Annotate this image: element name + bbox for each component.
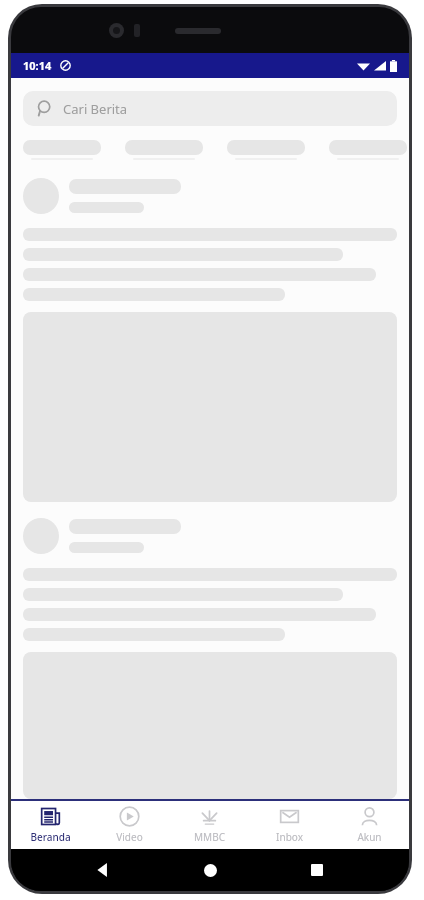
button[interactable]: Video [90, 801, 169, 849]
button[interactable]: Home [195, 855, 225, 885]
staticText: Akun [357, 830, 382, 844]
button[interactable]: MMBC [169, 801, 249, 849]
button[interactable]: Back [88, 855, 118, 885]
staticText: 10:14 [23, 58, 52, 73]
button[interactable]: Inbox [249, 801, 329, 849]
button[interactable]: Cari Berita [23, 91, 397, 126]
staticText: MMBC [194, 830, 225, 844]
button[interactable]: Akun [329, 801, 409, 849]
button[interactable]: Beranda [11, 801, 90, 849]
staticText: Video [116, 830, 143, 844]
staticText: Inbox [276, 830, 303, 844]
button[interactable]: Recent apps [302, 855, 332, 885]
staticText: Beranda [30, 830, 71, 844]
staticText: Cari Berita [63, 100, 128, 118]
